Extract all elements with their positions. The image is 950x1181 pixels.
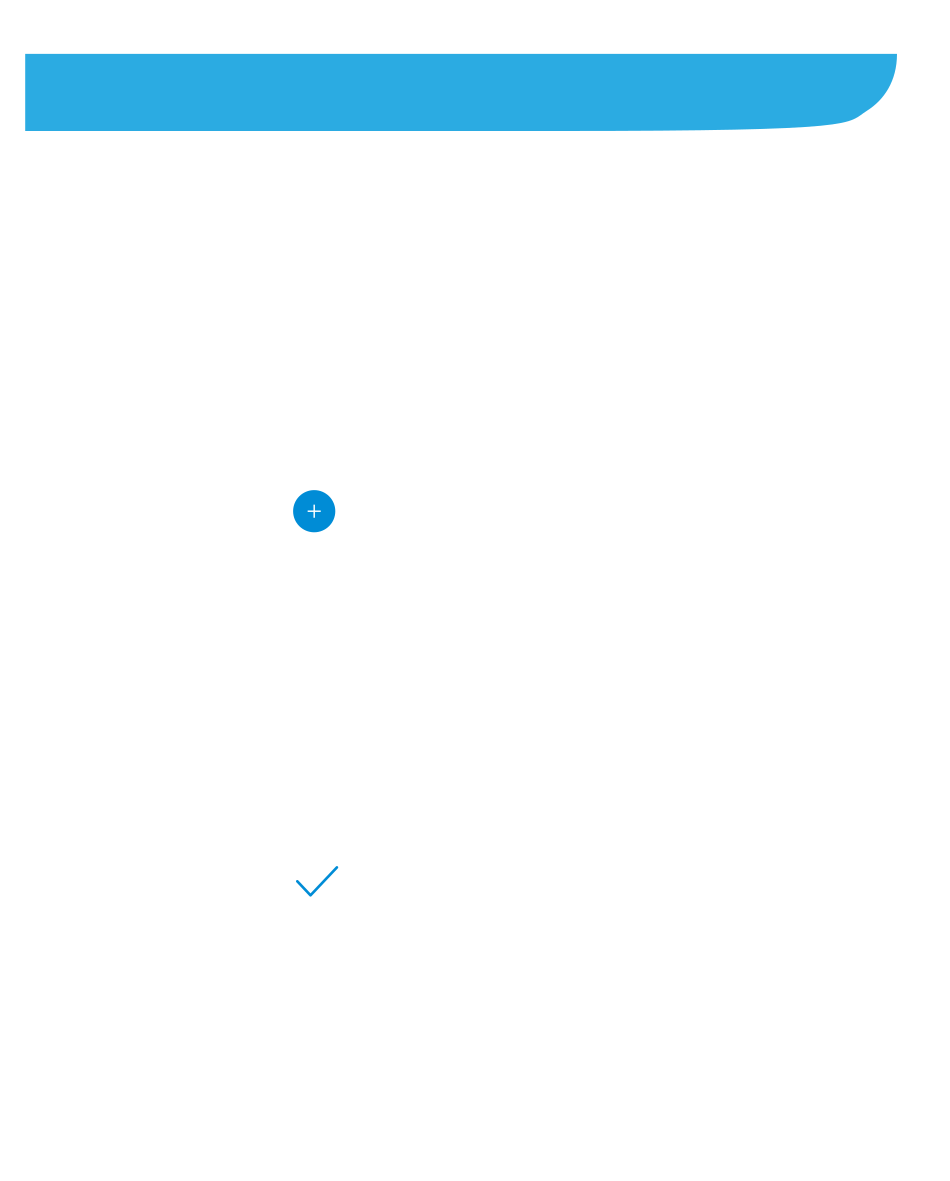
button[interactable]: Add [293,490,335,532]
button[interactable]: Done [295,865,339,899]
